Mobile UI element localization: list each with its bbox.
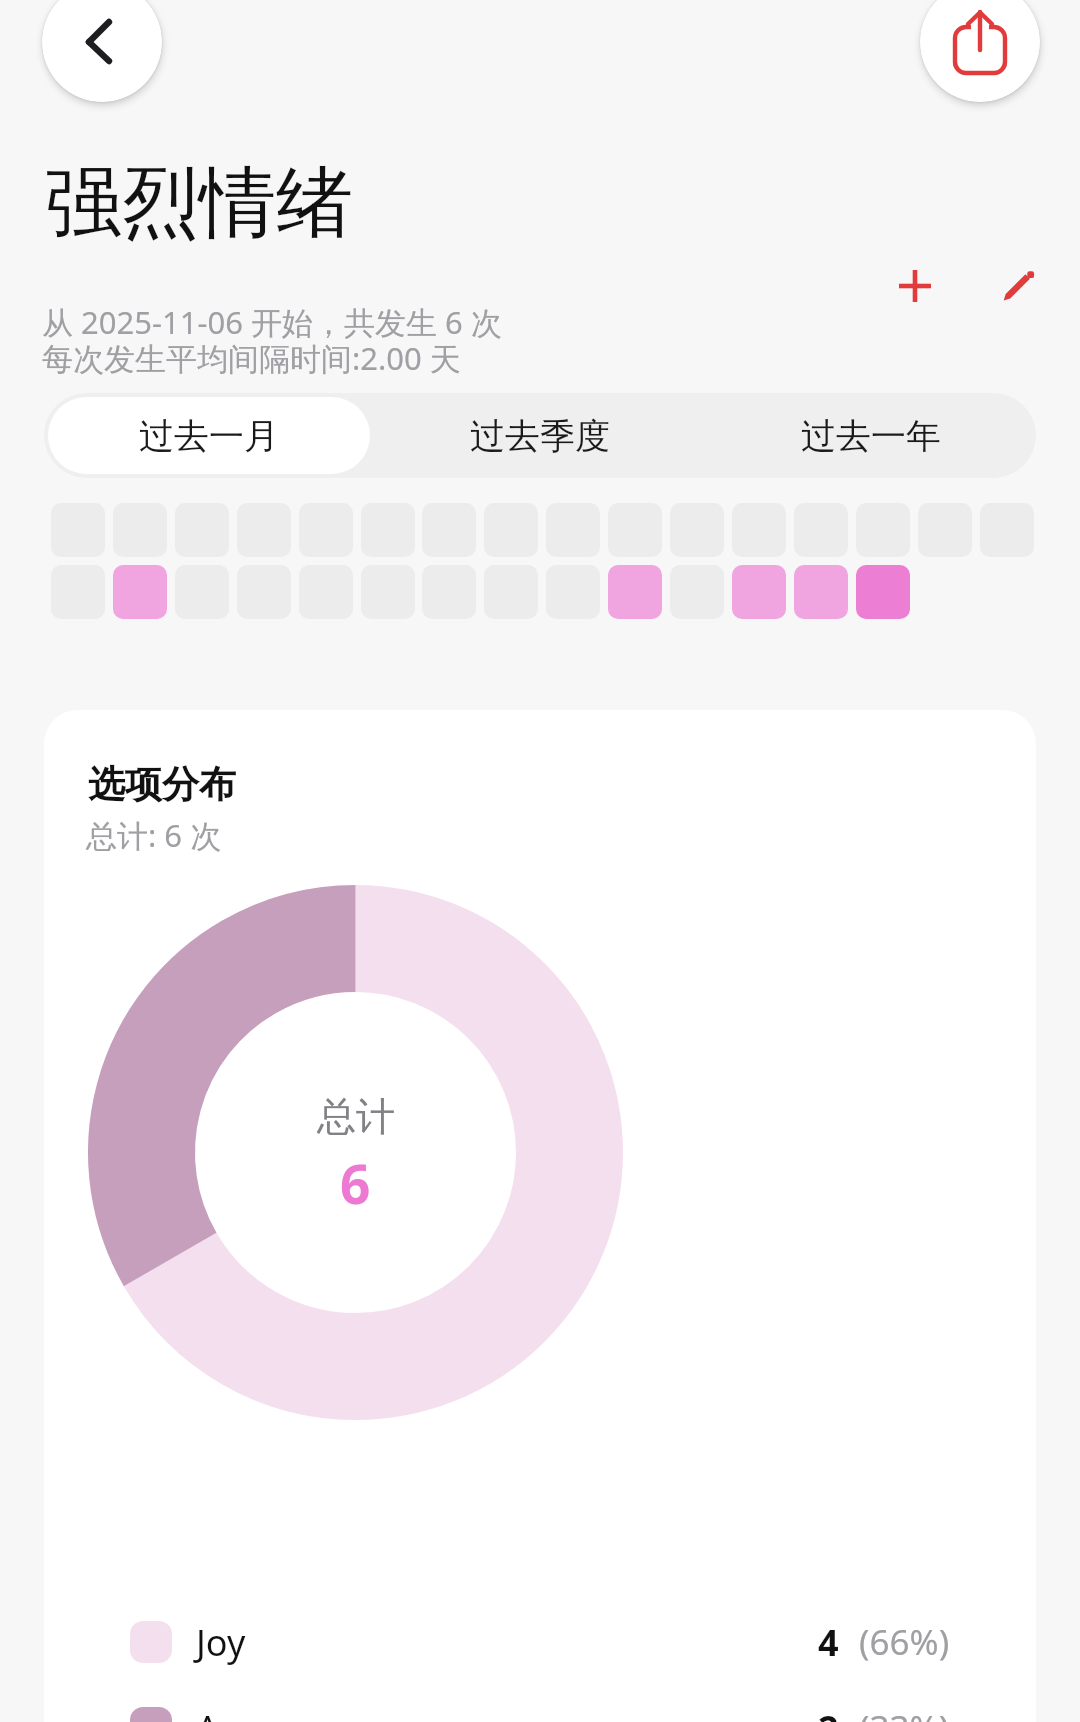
staticText: 2	[818, 1704, 839, 1722]
staticText: 选项分布	[88, 761, 236, 808]
button[interactable]: Anger	[130, 1703, 950, 1722]
button[interactable]: Add	[875, 246, 955, 326]
staticText: (33%)	[859, 1704, 950, 1722]
staticText: (66%)	[859, 1618, 950, 1666]
staticText: 总计	[317, 1092, 395, 1141]
staticText: 总计: 6 次	[86, 814, 222, 856]
staticText: 强烈情绪	[45, 155, 353, 252]
button[interactable]: 过去一年	[709, 397, 1032, 474]
staticText: 4	[818, 1618, 839, 1667]
button[interactable]: 过去季度	[378, 397, 701, 474]
staticText: 过去一年	[801, 414, 941, 458]
button[interactable]: 过去一月	[48, 397, 370, 474]
staticText: 过去季度	[470, 414, 610, 458]
staticText: 从 2025-11-06 开始，共发生 6 次	[42, 301, 502, 343]
button[interactable]: Edit	[977, 246, 1057, 326]
staticText: 6	[340, 1147, 371, 1219]
button[interactable]: Share	[920, 0, 1040, 102]
button[interactable]: Joy	[130, 1617, 950, 1667]
staticText: Anger	[196, 1704, 299, 1722]
staticText: 每次发生平均间隔时间:2.00 天	[42, 337, 461, 379]
staticText: Joy	[196, 1618, 246, 1667]
button[interactable]: Back	[42, 0, 162, 102]
staticText: 过去一月	[139, 414, 279, 458]
